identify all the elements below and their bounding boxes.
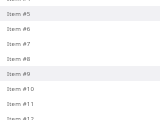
staticText: Item #6 bbox=[7, 25, 31, 33]
staticText: Item #8 bbox=[7, 55, 31, 63]
button[interactable]: Item #10 bbox=[0, 81, 160, 96]
staticText: Item #9 bbox=[7, 70, 31, 78]
staticText: Item #7 bbox=[7, 40, 31, 48]
staticText: Item #5 bbox=[7, 10, 31, 18]
button[interactable]: Item #7 bbox=[0, 36, 160, 51]
button[interactable]: Item #9 bbox=[0, 66, 160, 81]
button[interactable]: Item #11 bbox=[0, 96, 160, 111]
button[interactable]: Item #6 bbox=[0, 21, 160, 36]
button[interactable]: Item #12 bbox=[0, 111, 160, 120]
staticText: Item #11 bbox=[7, 100, 35, 108]
staticText: Item #4 bbox=[7, 0, 31, 3]
staticText: Item #10 bbox=[7, 85, 35, 93]
button[interactable]: Item #5 bbox=[0, 6, 160, 21]
button[interactable]: Item #4 bbox=[0, 0, 160, 6]
button[interactable]: Item #8 bbox=[0, 51, 160, 66]
staticText: Item #12 bbox=[7, 115, 35, 120]
